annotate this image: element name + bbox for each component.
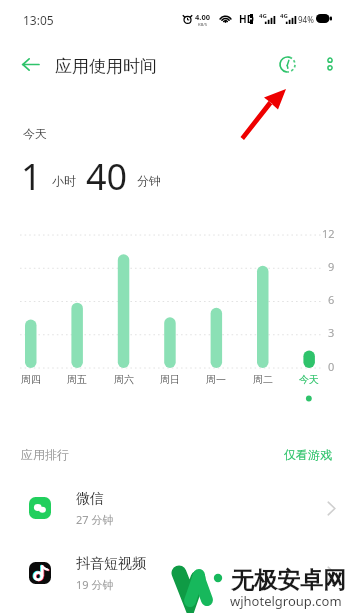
staticText: 周五	[67, 373, 87, 386]
staticText: 小时	[52, 173, 76, 188]
staticText: 无极安卓网	[231, 566, 346, 595]
staticText: 周日	[160, 373, 180, 386]
staticText: 40	[86, 152, 128, 201]
button[interactable]: 仅看游戏	[284, 447, 332, 462]
staticText: 9	[328, 259, 335, 274]
staticText: 今天	[23, 126, 47, 141]
staticText: 19 分钟	[76, 577, 114, 592]
staticText: 周二	[253, 373, 273, 386]
staticText: 4G	[280, 12, 288, 20]
staticText: 27 分钟	[76, 512, 114, 527]
staticText: 抖音短视频	[76, 555, 146, 573]
staticText: 4G	[259, 12, 267, 20]
staticText: 6	[328, 292, 335, 307]
staticText: HD	[239, 12, 254, 26]
staticText: KB/S	[198, 22, 208, 28]
button[interactable]: More options	[312, 46, 348, 82]
staticText: 13:05	[23, 12, 54, 28]
staticText: 94%	[298, 14, 314, 25]
staticText: 仅看游戏	[284, 447, 332, 462]
button[interactable]: 微信	[0, 479, 356, 537]
staticText: 分钟	[137, 173, 161, 188]
staticText: 周六	[114, 373, 134, 386]
staticText: 应用排行	[21, 447, 69, 462]
staticText: 今天	[299, 373, 319, 386]
button[interactable]: Screen time limit	[269, 46, 305, 82]
button[interactable]: Back	[12, 46, 48, 82]
staticText: 周一	[206, 373, 226, 386]
staticText: 0	[328, 359, 335, 374]
staticText: 1	[21, 152, 42, 201]
staticText: 微信	[76, 490, 104, 508]
staticText: wjhotelgroup.com	[230, 592, 342, 610]
staticText: 12	[322, 226, 335, 241]
staticText: 应用使用时间	[55, 56, 157, 77]
staticText: 4.00	[195, 12, 210, 22]
button[interactable]: 抖音短视频	[0, 544, 356, 602]
staticText: 周四	[21, 373, 41, 386]
staticText: 3	[328, 325, 335, 340]
